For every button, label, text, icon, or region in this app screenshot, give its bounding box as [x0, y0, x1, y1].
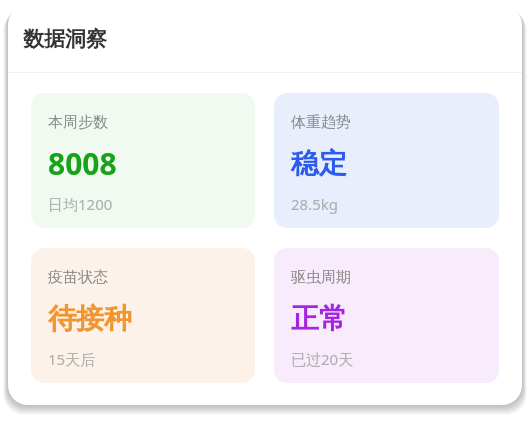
staticText: 待接种: [48, 301, 132, 336]
button[interactable]: 本周步数 8008 日均1200: [31, 93, 255, 228]
staticText: 驱虫周期: [291, 268, 351, 287]
staticText: 日均1200: [48, 194, 113, 214]
button[interactable]: 疫苗状态 待接种 15天后: [31, 248, 255, 383]
staticText: 正常: [291, 301, 347, 336]
staticText: 本周步数: [48, 113, 108, 132]
button[interactable]: 体重趋势 稳定 28.5kg: [274, 93, 499, 228]
staticText: 体重趋势: [291, 113, 351, 132]
staticText: 8008: [48, 143, 117, 184]
staticText: 15天后: [48, 349, 96, 369]
staticText: 28.5kg: [291, 194, 338, 214]
staticText: 数据洞察: [23, 26, 107, 52]
button[interactable]: 驱虫周期 正常 已过20天: [274, 248, 499, 383]
staticText: 疫苗状态: [48, 268, 108, 287]
staticText: 已过20天: [291, 349, 354, 369]
staticText: 稳定: [291, 146, 347, 181]
button[interactable]: 数据洞察: [23, 24, 107, 54]
